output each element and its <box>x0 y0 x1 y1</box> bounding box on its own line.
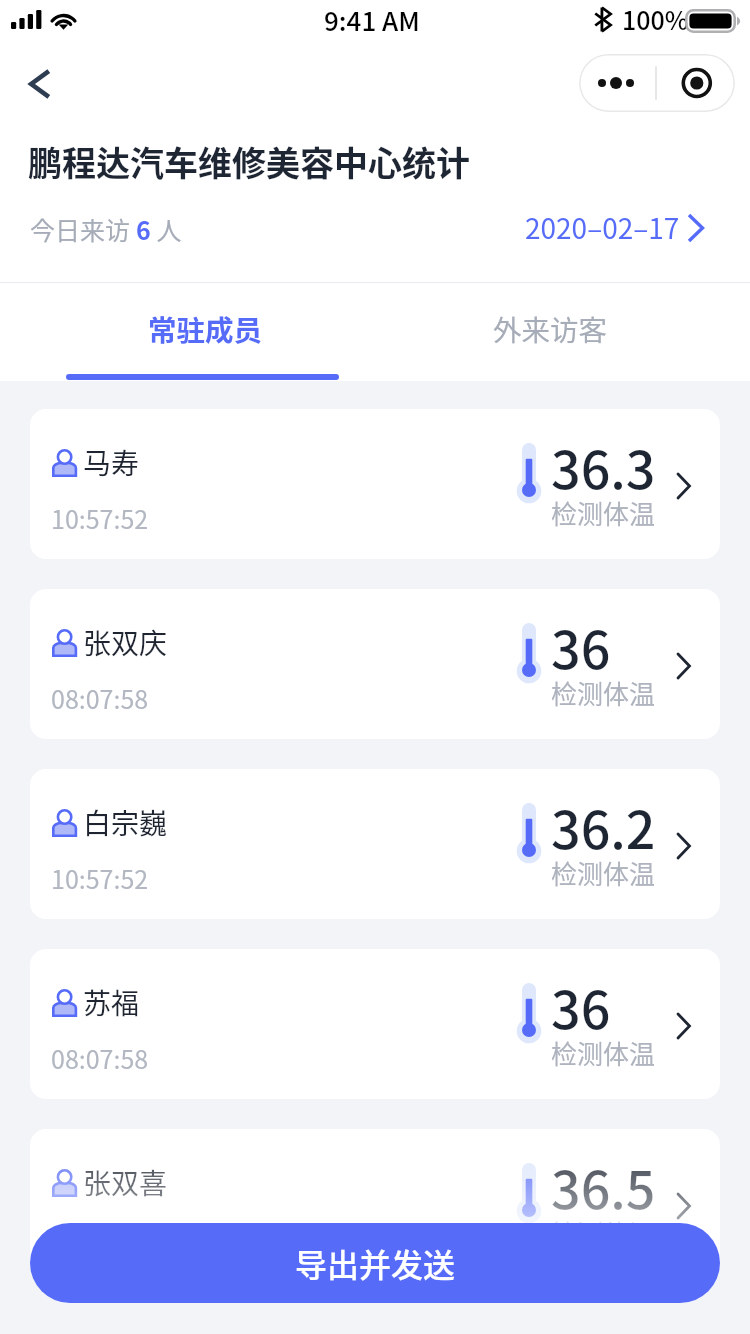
staticText: 36.5 <box>551 1149 656 1224</box>
staticText: 36.3 <box>551 429 656 504</box>
staticText: 白宗巍 <box>83 802 168 843</box>
staticText: 检测体温 <box>551 1214 656 1252</box>
button[interactable]: 张双喜 <box>30 1129 720 1279</box>
staticText: 08:07:58 <box>51 680 149 716</box>
button[interactable]: 常驻成员 <box>69 289 342 367</box>
button[interactable]: 2020–02–17 <box>525 207 709 248</box>
staticText: 马寿 <box>83 442 140 483</box>
staticText: 张双喜 <box>83 1162 168 1203</box>
staticText: 导出并发送 <box>295 1240 456 1286</box>
staticText: 36.2 <box>551 789 656 864</box>
button[interactable]: 导出并发送 <box>30 1223 720 1303</box>
staticText: 今日来访 <box>30 211 136 247</box>
button[interactable]: 张双庆 <box>30 589 720 739</box>
button[interactable]: More options <box>579 54 735 112</box>
staticText: 检测体温 <box>551 674 656 712</box>
staticText: 9:41 AM <box>324 1 420 39</box>
staticText: 检测体温 <box>551 854 656 892</box>
button[interactable]: 外来访客 <box>414 289 687 367</box>
staticText: 外来访客 <box>493 308 608 349</box>
staticText: 苏福 <box>83 982 140 1023</box>
staticText: 100% <box>622 1 689 37</box>
button[interactable]: 马寿 <box>30 409 720 559</box>
staticText: 人 <box>151 211 182 247</box>
staticText: 常驻成员 <box>148 308 263 349</box>
staticText: 鹏程达汽车维修美容中心统计 <box>28 137 470 186</box>
button[interactable]: 苏福 <box>30 949 720 1099</box>
staticText: 张双庆 <box>83 622 168 663</box>
staticText: 10:57:52 <box>51 860 149 896</box>
staticText: 检测体温 <box>551 494 656 532</box>
button[interactable]: Back <box>14 60 62 108</box>
staticText: 36 <box>551 609 611 684</box>
staticText: 10:57:52 <box>51 500 149 536</box>
staticText: 10:57:52 <box>51 1220 149 1256</box>
staticText: 6 <box>136 211 151 247</box>
button[interactable]: 白宗巍 <box>30 769 720 919</box>
staticText: 36 <box>551 969 611 1044</box>
staticText: 2020–02–17 <box>525 207 680 248</box>
staticText: 08:07:58 <box>51 1040 149 1076</box>
staticText: 检测体温 <box>551 1034 656 1072</box>
